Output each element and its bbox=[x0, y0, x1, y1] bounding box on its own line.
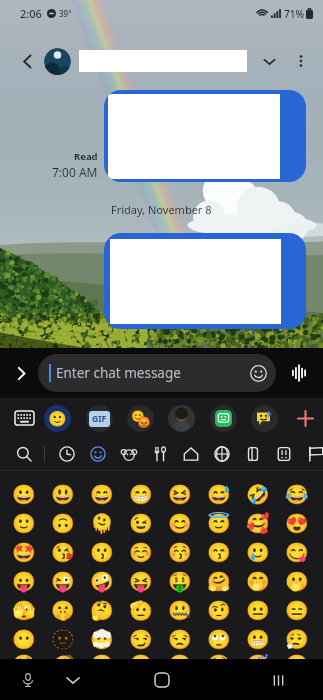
button[interactable]: 😗 bbox=[82, 537, 121, 566]
button[interactable]: 🤗 bbox=[199, 566, 238, 595]
button[interactable]: Hide keyboard bbox=[55, 662, 91, 698]
button[interactable] bbox=[104, 90, 306, 182]
button[interactable]: 😋 bbox=[277, 537, 316, 566]
button[interactable]: 🤑 bbox=[160, 566, 199, 595]
button[interactable]: 😆 bbox=[160, 479, 199, 508]
button[interactable]: 🤩 bbox=[5, 537, 43, 566]
button[interactable]: 🤫 bbox=[43, 595, 82, 624]
button[interactable]: 😄 bbox=[82, 479, 121, 508]
button[interactable]: 😚 bbox=[160, 537, 199, 566]
button[interactable]: 😀 bbox=[5, 479, 43, 508]
button[interactable]: 😐 bbox=[238, 595, 277, 624]
button[interactable]: Home bbox=[144, 662, 180, 698]
button[interactable]: 😶 bbox=[82, 624, 121, 653]
staticText: 😴 bbox=[246, 653, 270, 659]
button[interactable]: 😊 bbox=[160, 508, 199, 537]
staticText: 😅 bbox=[207, 483, 231, 505]
button[interactable]: ☺️ bbox=[121, 537, 160, 566]
button[interactable]: Search emoji bbox=[9, 439, 39, 469]
staticText: 😝 bbox=[129, 570, 153, 592]
button[interactable]: Food bbox=[146, 440, 174, 468]
button[interactable]: 🙃 bbox=[43, 508, 82, 537]
button[interactable]: 😃 bbox=[43, 479, 82, 508]
button[interactable]: 😙 bbox=[199, 537, 238, 566]
staticText: 🙄 bbox=[207, 628, 231, 650]
button[interactable]: 😌 bbox=[82, 653, 121, 659]
staticText: 🤔 bbox=[90, 599, 114, 621]
button[interactable]: Objects bbox=[239, 440, 267, 468]
button[interactable]: Your avatar bbox=[168, 405, 195, 432]
button[interactable]: 😛 bbox=[5, 566, 43, 595]
button[interactable]: 😅 bbox=[199, 479, 238, 508]
staticText: 😮‍💨 bbox=[285, 628, 309, 650]
button[interactable]: Contact photo bbox=[44, 48, 71, 75]
button[interactable]: 😘 bbox=[43, 537, 82, 566]
button[interactable]: Back bbox=[12, 46, 42, 76]
button[interactable]: 🤐 bbox=[160, 595, 199, 624]
button[interactable]: 😁 bbox=[121, 479, 160, 508]
button[interactable]: 😪 bbox=[160, 653, 199, 659]
button[interactable]: 😏 bbox=[121, 624, 160, 653]
button[interactable]: 😜 bbox=[43, 566, 82, 595]
button[interactable]: Expand details bbox=[255, 47, 283, 75]
button[interactable]: Voice input bbox=[10, 662, 46, 698]
staticText: 😜 bbox=[51, 570, 75, 592]
button[interactable]: Smileys bbox=[84, 440, 112, 468]
staticText: 😃 bbox=[51, 483, 75, 505]
button[interactable]: Animated emoji bbox=[251, 405, 278, 432]
button[interactable]: Travel bbox=[177, 440, 205, 468]
button[interactable]: 🫢 bbox=[277, 566, 316, 595]
button[interactable]: Add bbox=[291, 404, 319, 432]
button[interactable]: 🫥 bbox=[43, 624, 82, 653]
button[interactable]: 😶 bbox=[5, 624, 43, 653]
button[interactable]: 😂 bbox=[277, 479, 316, 508]
button[interactable]: Keyboard bbox=[9, 403, 39, 433]
staticText: 🤥 bbox=[12, 653, 36, 659]
button[interactable]: Flags bbox=[301, 440, 323, 468]
button[interactable]: Recent apps bbox=[260, 662, 296, 698]
button[interactable]: 🤨 bbox=[199, 595, 238, 624]
button[interactable]: 😑 bbox=[277, 595, 316, 624]
button[interactable]: Voice message bbox=[284, 358, 314, 388]
button[interactable]: 😉 bbox=[121, 508, 160, 537]
button[interactable]: Recent bbox=[53, 440, 81, 468]
button[interactable]: 🫣 bbox=[5, 595, 43, 624]
button[interactable]: 😷 bbox=[277, 653, 316, 659]
button[interactable]: Show more actions bbox=[6, 358, 36, 388]
button[interactable]: 🤔 bbox=[82, 595, 121, 624]
button[interactable]: Enter chat message bbox=[38, 354, 276, 392]
button[interactable]: 🥲 bbox=[238, 537, 277, 566]
button[interactable]: Emoji stickers bbox=[210, 405, 237, 432]
staticText: 🤤 bbox=[207, 653, 231, 659]
button[interactable]: 😬 bbox=[238, 624, 277, 653]
button[interactable]: GIF bbox=[86, 405, 113, 432]
button[interactable]: 🙄 bbox=[199, 624, 238, 653]
button[interactable] bbox=[104, 233, 306, 329]
button[interactable]: 😴 bbox=[238, 653, 277, 659]
button[interactable]: Emoji bbox=[44, 405, 71, 432]
staticText: 😇 bbox=[207, 512, 231, 534]
button[interactable]: More options bbox=[287, 47, 315, 75]
button[interactable]: 🤤 bbox=[199, 653, 238, 659]
button[interactable]: 🤥 bbox=[5, 653, 43, 659]
button[interactable]: 😔 bbox=[121, 653, 160, 659]
button[interactable]: 🤪 bbox=[82, 566, 121, 595]
button[interactable]: 😍 bbox=[277, 508, 316, 537]
button[interactable]: 🤭 bbox=[238, 566, 277, 595]
button[interactable]: 😮‍💨 bbox=[277, 624, 316, 653]
button[interactable]: Activities bbox=[208, 440, 236, 468]
button[interactable]: Animals bbox=[115, 440, 143, 468]
button[interactable]: 🫨 bbox=[43, 653, 82, 659]
button[interactable]: 🤣 bbox=[238, 479, 277, 508]
button[interactable]: 🥰 bbox=[238, 508, 277, 537]
button[interactable]: 🙂 bbox=[5, 508, 43, 537]
staticText: 😶 bbox=[90, 628, 114, 650]
button[interactable]: Stickers bbox=[127, 405, 154, 432]
button[interactable]: 😇 bbox=[199, 508, 238, 537]
button[interactable]: 🫡 bbox=[121, 595, 160, 624]
button[interactable]: 🫠 bbox=[82, 508, 121, 537]
button[interactable]: 😝 bbox=[121, 566, 160, 595]
button[interactable]: Symbols bbox=[270, 440, 298, 468]
button[interactable]: 😒 bbox=[160, 624, 199, 653]
